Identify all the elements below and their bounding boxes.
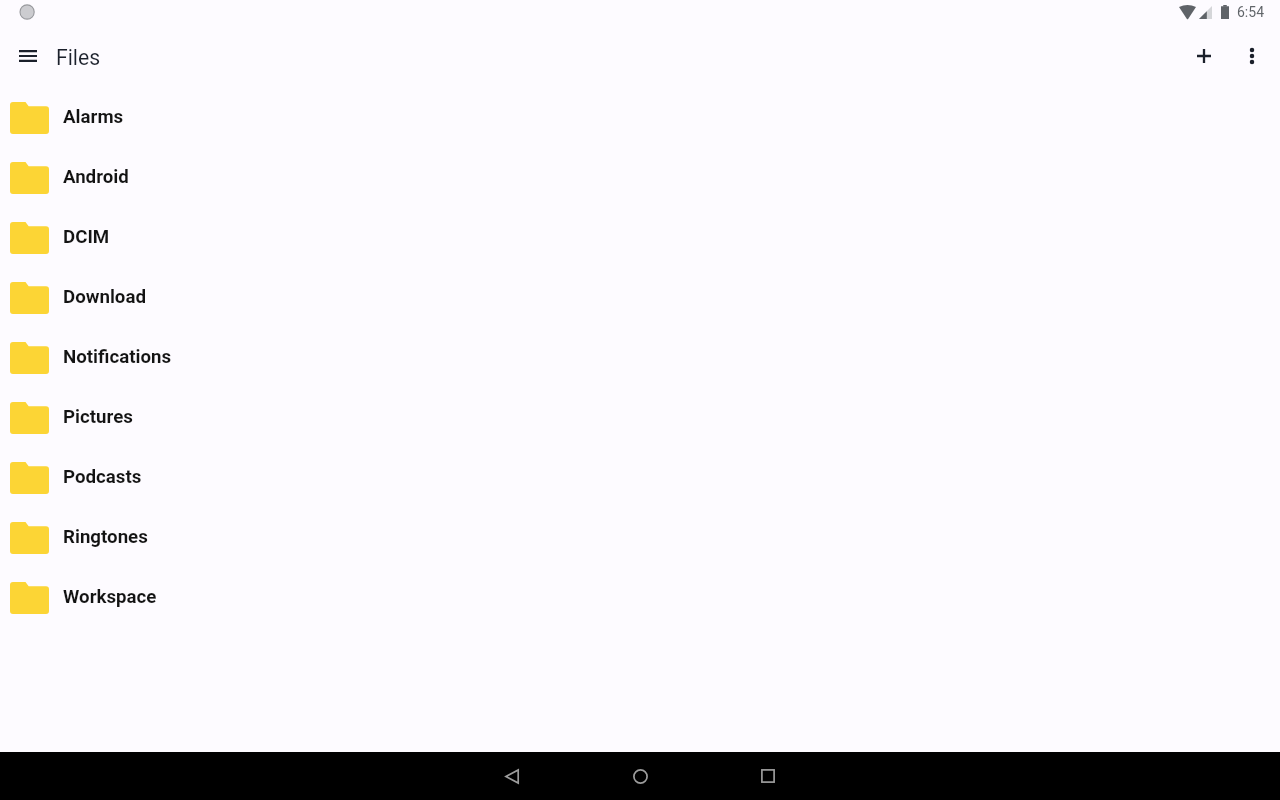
button[interactable]: DCIM	[0, 208, 1280, 268]
staticText: 6:54	[1237, 4, 1264, 20]
button[interactable]: Podcasts	[0, 448, 1280, 508]
button[interactable]: Alarms	[0, 88, 1280, 148]
button[interactable]: Pictures	[0, 388, 1280, 448]
button[interactable]: Download	[0, 268, 1280, 328]
staticText: Pictures	[63, 406, 133, 428]
button[interactable]: Ringtones	[0, 508, 1280, 568]
button[interactable]: More options	[1228, 32, 1276, 80]
button[interactable]: Open navigation drawer	[0, 28, 56, 84]
staticText: Files	[56, 45, 101, 70]
staticText: Download	[63, 286, 146, 308]
button[interactable]: Home	[616, 752, 664, 800]
button[interactable]: Workspace	[0, 568, 1280, 628]
staticText: Android	[63, 166, 129, 188]
button[interactable]: Notifications	[0, 328, 1280, 388]
staticText: Alarms	[63, 106, 124, 128]
staticText: Ringtones	[63, 526, 148, 548]
button[interactable]: Android	[0, 148, 1280, 208]
button[interactable]: Add	[1180, 32, 1228, 80]
button[interactable]: Back	[488, 752, 536, 800]
staticText: Podcasts	[63, 466, 142, 488]
button[interactable]: Recent apps	[744, 752, 792, 800]
staticText: Notifications	[63, 346, 172, 368]
staticText: DCIM	[63, 226, 110, 248]
staticText: Workspace	[63, 586, 157, 608]
